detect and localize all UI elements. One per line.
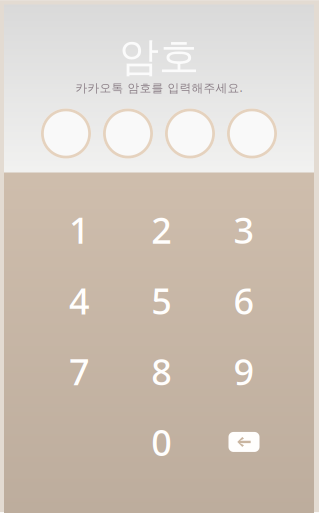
button[interactable]: 8	[121, 336, 203, 407]
staticText: 7	[69, 347, 90, 395]
button[interactable]: 0	[121, 407, 203, 477]
staticText: 3	[233, 206, 254, 254]
button[interactable]: Delete	[203, 407, 285, 477]
staticText: 1	[69, 206, 90, 254]
staticText: 4	[69, 277, 90, 324]
staticText: 암호	[119, 32, 199, 81]
staticText: 2	[151, 206, 172, 254]
button[interactable]: 2	[121, 194, 203, 265]
staticText: 카카오톡 암호를 입력해주세요.	[75, 79, 242, 95]
staticText: 0	[151, 418, 172, 466]
button[interactable]: 7	[38, 336, 121, 407]
button[interactable]: 3	[203, 194, 285, 265]
staticText: 5	[151, 277, 172, 324]
staticText: 9	[233, 347, 254, 395]
staticText: 6	[233, 277, 254, 324]
button[interactable]: 6	[203, 265, 285, 336]
staticText: 8	[151, 347, 172, 395]
button[interactable]: 9	[203, 336, 285, 407]
button[interactable]: 4	[38, 265, 121, 336]
button[interactable]: 1	[38, 194, 121, 265]
button[interactable]: 5	[121, 265, 203, 336]
